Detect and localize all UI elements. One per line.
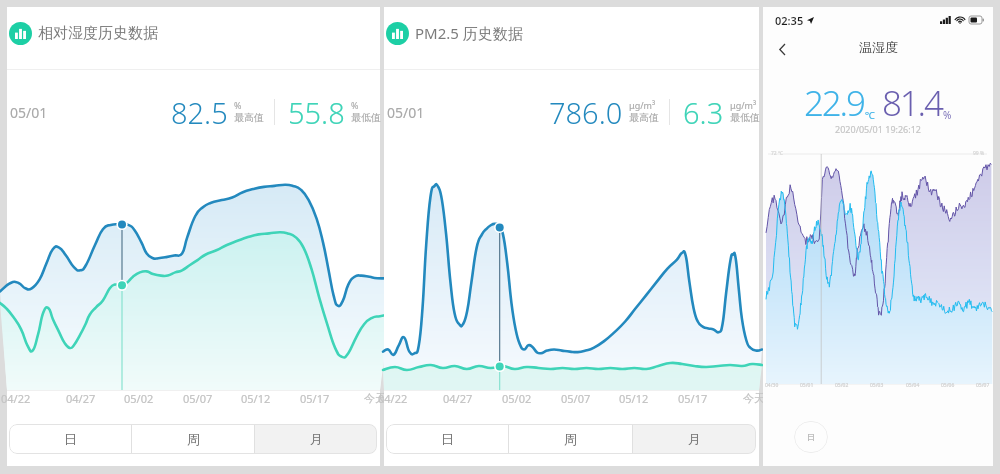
staticText: μg/m³ (629, 99, 656, 111)
button[interactable]: Back (771, 38, 793, 60)
staticText: 02:35 (775, 13, 804, 28)
staticText: 最低值 (730, 111, 760, 124)
staticText: 2020/05/01 19:26:12 (763, 123, 993, 135)
staticText: 05/01 (800, 382, 814, 389)
staticText: 05/07 (183, 391, 213, 406)
button[interactable]: 周 (509, 424, 632, 454)
staticText: 04/27 (66, 391, 96, 406)
staticText: 周 (187, 431, 200, 447)
staticText: 最高值 (234, 111, 264, 124)
staticText: 22.9 (804, 79, 864, 127)
staticText: % (943, 108, 952, 122)
staticText: 05/02 (835, 382, 849, 389)
staticText: 04/22 (1, 391, 31, 406)
staticText: 05/02 (502, 391, 532, 406)
staticText: 6.3 (683, 93, 724, 132)
staticText: % (234, 99, 242, 111)
staticText: 04/22 (378, 391, 408, 406)
staticText: 04/30 (765, 382, 779, 389)
staticText: 05/12 (619, 391, 649, 406)
button[interactable]: 周 (132, 424, 254, 454)
staticText: 05/01 (10, 103, 48, 122)
staticText: 05/04 (906, 382, 920, 389)
staticText: 05/01 (387, 103, 425, 122)
button[interactable]: 日 (9, 424, 131, 454)
staticText: ℃ (865, 108, 875, 122)
staticText: 05/02 (124, 391, 154, 406)
staticText: 日 (807, 432, 815, 442)
staticText: 月 (310, 431, 323, 447)
staticText: 81.4 (882, 79, 942, 127)
staticText: 05/03 (870, 382, 884, 389)
staticText: 日 (441, 431, 454, 447)
staticText: 05/07 (561, 391, 591, 406)
staticText: 周 (564, 431, 577, 447)
staticText: 05/17 (678, 391, 708, 406)
staticText: 99 % (973, 150, 985, 157)
staticText: 786.0 (549, 93, 623, 132)
staticText: 05/07 (976, 382, 990, 389)
staticText: 最低值 (351, 111, 381, 124)
button[interactable]: 日 (794, 421, 828, 453)
staticText: 相对湿度历史数据 (38, 24, 158, 43)
button[interactable]: 月 (633, 424, 756, 454)
staticText: 今天 (364, 391, 386, 405)
staticText: 日 (64, 431, 77, 447)
staticText: 05/17 (300, 391, 330, 406)
staticText: 82.5 (171, 93, 228, 132)
staticText: 温湿度 (859, 39, 898, 55)
staticText: 最高值 (629, 111, 659, 124)
button[interactable]: 日 (386, 424, 508, 454)
staticText: 05/06 (941, 382, 955, 389)
staticText: 05/12 (241, 391, 271, 406)
staticText: 今天 (743, 391, 765, 405)
staticText: 72 ℃ (771, 150, 783, 157)
staticText: % (351, 99, 359, 111)
staticText: 55.8 (288, 93, 345, 132)
staticText: 04/27 (443, 391, 473, 406)
button[interactable]: 月 (255, 424, 377, 454)
staticText: 月 (688, 431, 701, 447)
staticText: μg/m³ (730, 99, 757, 111)
staticText: PM2.5 历史数据 (415, 23, 523, 43)
